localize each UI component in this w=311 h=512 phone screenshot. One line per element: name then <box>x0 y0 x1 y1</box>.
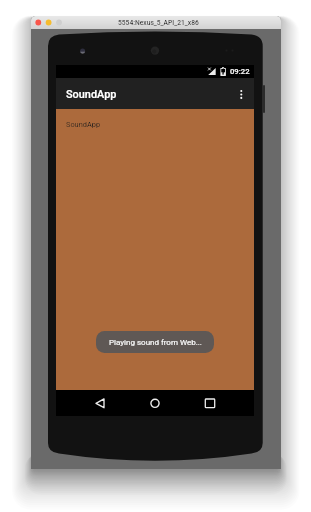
staticText: 5554:Nexus_5_API_21_x86 <box>118 19 199 27</box>
button[interactable]: Back <box>87 390 113 416</box>
button[interactable]: Home <box>142 390 168 416</box>
staticText: 09:22 <box>230 67 250 76</box>
staticText: SoundApp <box>66 88 117 101</box>
staticText: Playing sound from Web... <box>109 338 202 347</box>
button[interactable]: More options <box>232 78 254 109</box>
staticText: SoundApp <box>66 120 101 129</box>
button[interactable]: Recent apps <box>197 390 223 416</box>
